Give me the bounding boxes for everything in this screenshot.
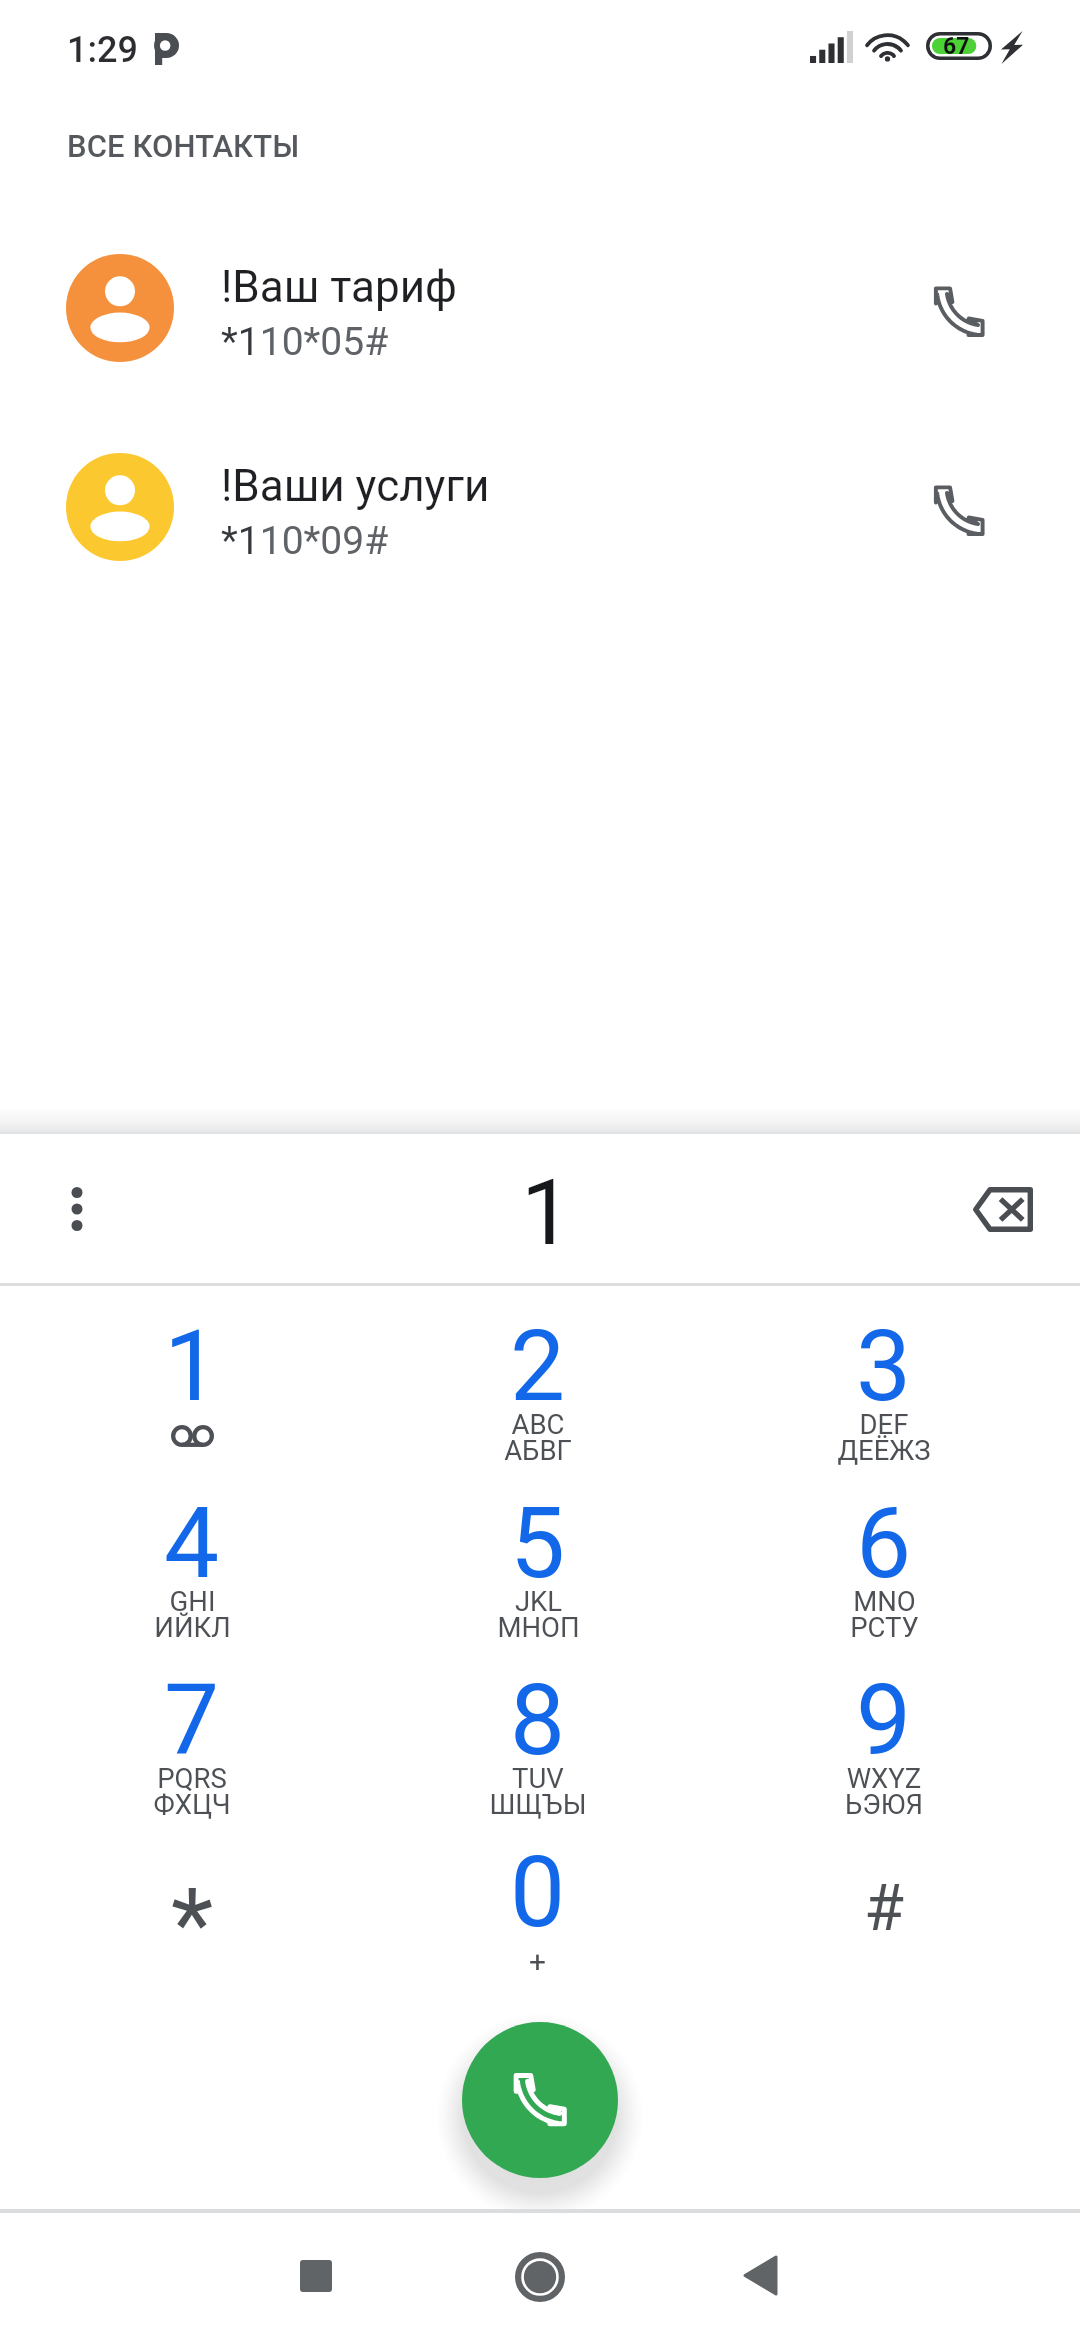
- staticText: *110*05#: [221, 319, 389, 365]
- staticText: 1:29: [67, 29, 138, 71]
- staticText: +: [529, 1944, 547, 1979]
- staticText: DEF ДЕЁЖЗ: [837, 1408, 931, 1467]
- staticText: 6: [856, 1486, 912, 1601]
- button[interactable]: 9: [711, 1671, 1057, 1848]
- staticText: 1: [164, 1309, 220, 1424]
- staticText: 9: [856, 1663, 912, 1778]
- button[interactable]: 6: [711, 1494, 1057, 1671]
- staticText: GHI ИЙКЛ: [154, 1585, 231, 1644]
- staticText: !Ваши услуги: [221, 460, 490, 512]
- staticText: #: [864, 1870, 905, 1946]
- button[interactable]: 4: [19, 1494, 365, 1671]
- button[interactable]: Backspace: [943, 1134, 1063, 1284]
- staticText: PQRS ФХЦЧ: [153, 1762, 231, 1821]
- staticText: JKL МНОП: [497, 1585, 580, 1644]
- button[interactable]: 1: [19, 1317, 365, 1494]
- staticText: WXYZ ЬЭЮЯ: [845, 1762, 923, 1821]
- button[interactable]: Back: [682, 2213, 838, 2340]
- button[interactable]: Call contact: [904, 407, 1080, 606]
- staticText: 3: [856, 1309, 912, 1424]
- staticText: 67: [943, 33, 970, 60]
- button[interactable]: 3: [711, 1317, 1057, 1494]
- button[interactable]: Call contact: [904, 208, 1080, 407]
- button[interactable]: 2: [365, 1317, 711, 1494]
- staticText: TUV ШЩЪЫ: [489, 1762, 587, 1821]
- button[interactable]: *: [19, 1843, 365, 2020]
- staticText: 1: [521, 1160, 573, 1267]
- button[interactable]: !Ваш тариф: [0, 208, 1080, 407]
- button[interactable]: Call: [462, 2022, 618, 2178]
- button[interactable]: 5: [365, 1494, 711, 1671]
- button[interactable]: !Ваши услуги: [0, 407, 1080, 606]
- button[interactable]: #: [711, 1843, 1057, 2020]
- staticText: 2: [510, 1309, 566, 1424]
- staticText: !Ваш тариф: [221, 261, 457, 313]
- staticText: 7: [164, 1663, 220, 1778]
- button[interactable]: 8: [365, 1671, 711, 1848]
- staticText: 0: [510, 1835, 566, 1950]
- staticText: 8: [510, 1663, 566, 1778]
- staticText: ABC АБВГ: [504, 1408, 572, 1467]
- staticText: MNO РСТУ: [850, 1585, 919, 1644]
- button[interactable]: 0: [365, 1843, 711, 2020]
- staticText: *: [171, 1867, 214, 1982]
- staticText: *110*09#: [221, 518, 389, 564]
- button[interactable]: Home: [462, 2213, 618, 2340]
- button[interactable]: More options: [27, 1134, 127, 1284]
- button[interactable]: 7: [19, 1671, 365, 1848]
- staticText: ВСЕ КОНТАКТЫ: [67, 128, 300, 164]
- staticText: 4: [164, 1486, 220, 1601]
- button[interactable]: Recents: [238, 2213, 394, 2340]
- staticText: 5: [510, 1486, 566, 1601]
